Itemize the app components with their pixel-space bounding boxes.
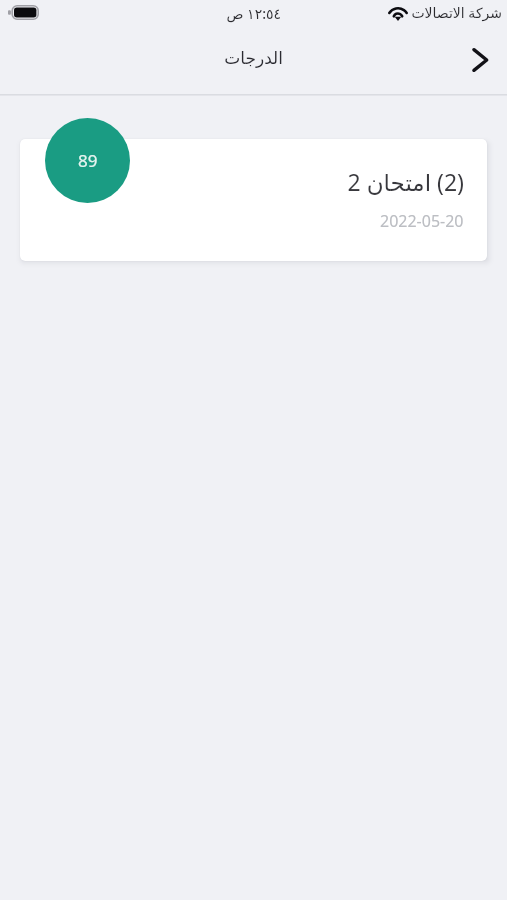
staticText: ١٢:٥٤ ص xyxy=(226,4,281,23)
staticText: (2) امتحان 2 xyxy=(347,166,464,197)
button[interactable]: Back xyxy=(456,36,504,84)
staticText: الدرجات xyxy=(224,48,283,68)
button[interactable]: Grade 89 xyxy=(45,118,130,203)
staticText: 2022-05-20 xyxy=(380,210,464,232)
staticText: 89 xyxy=(78,149,98,172)
button[interactable]: (2) امتحان 2 xyxy=(20,139,487,261)
staticText: شركة الاتصالات xyxy=(411,3,502,22)
